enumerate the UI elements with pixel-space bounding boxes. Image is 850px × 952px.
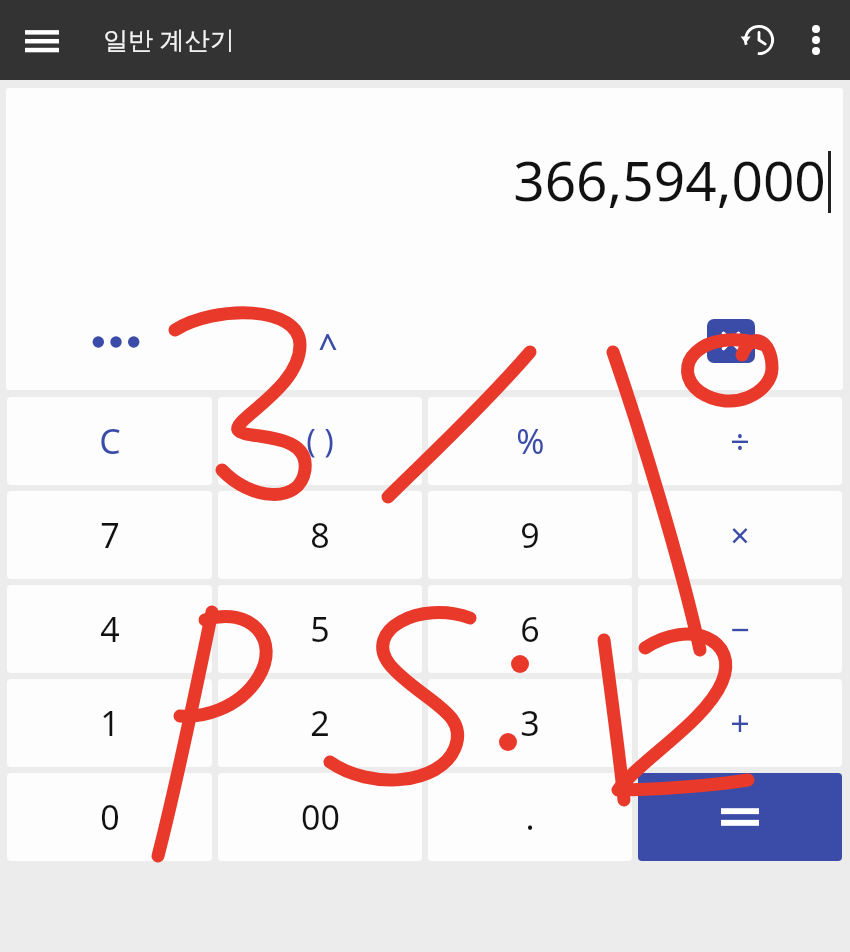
- staticText: 6: [520, 606, 540, 652]
- button[interactable]: 1: [7, 679, 212, 767]
- staticText: 4: [100, 606, 120, 652]
- staticText: ×: [730, 512, 750, 558]
- staticText: 7: [100, 512, 120, 558]
- staticText: .: [525, 794, 535, 840]
- button[interactable]: [638, 773, 842, 861]
- button[interactable]: 3: [428, 679, 632, 767]
- button[interactable]: −: [638, 585, 842, 673]
- button[interactable]: 4: [7, 585, 212, 673]
- staticText: 1: [100, 700, 120, 746]
- button[interactable]: 5: [218, 585, 422, 673]
- button[interactable]: History: [730, 11, 788, 69]
- button[interactable]: ^: [294, 310, 362, 374]
- staticText: ( ): [306, 419, 334, 463]
- button[interactable]: %: [428, 397, 632, 485]
- button[interactable]: 6: [428, 585, 632, 673]
- button[interactable]: More options: [788, 12, 844, 68]
- button[interactable]: 9: [428, 491, 632, 579]
- button[interactable]: ( ): [218, 397, 422, 485]
- staticText: 00: [301, 794, 340, 840]
- button[interactable]: C: [7, 397, 212, 485]
- button[interactable]: 0: [7, 773, 212, 861]
- staticText: C: [99, 418, 121, 464]
- staticText: 366,594,000: [513, 142, 826, 217]
- button[interactable]: 7: [7, 491, 212, 579]
- button[interactable]: ÷: [638, 397, 842, 485]
- staticText: ÷: [730, 418, 750, 464]
- staticText: 0: [100, 794, 120, 840]
- button[interactable]: More functions: [78, 310, 154, 374]
- button[interactable]: Menu: [14, 12, 70, 68]
- staticText: 8: [310, 512, 330, 558]
- button[interactable]: 00: [218, 773, 422, 861]
- staticText: 9: [520, 512, 540, 558]
- button[interactable]: .: [428, 773, 632, 861]
- button[interactable]: +: [638, 679, 842, 767]
- button[interactable]: 2: [218, 679, 422, 767]
- button[interactable]: 8: [218, 491, 422, 579]
- button[interactable]: Clear: [707, 319, 755, 363]
- button[interactable]: ×: [638, 491, 842, 579]
- staticText: %: [516, 418, 545, 464]
- staticText: −: [730, 606, 750, 652]
- staticText: 2: [310, 700, 330, 746]
- staticText: 5: [310, 606, 330, 652]
- staticText: ^: [318, 323, 338, 369]
- staticText: 일반 계산기: [103, 22, 235, 56]
- staticText: +: [730, 700, 750, 746]
- staticText: 3: [520, 700, 540, 746]
